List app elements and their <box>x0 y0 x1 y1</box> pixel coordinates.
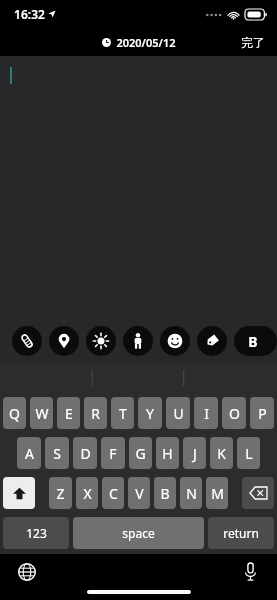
button[interactable]: E <box>57 397 80 429</box>
button[interactable]: Change keyboard language <box>12 557 42 587</box>
staticText: X <box>83 484 92 503</box>
staticText: C <box>109 484 118 503</box>
staticText: Y <box>146 404 154 423</box>
button[interactable]: return <box>208 517 274 549</box>
button[interactable]: H <box>156 437 179 469</box>
button[interactable]: Person <box>123 326 153 356</box>
button[interactable]: Shift <box>3 477 35 509</box>
button[interactable]: C <box>102 477 124 509</box>
button[interactable]: S <box>45 437 69 469</box>
button[interactable]: P <box>250 397 274 429</box>
staticText: U <box>173 404 184 423</box>
button[interactable]: Q <box>3 397 26 429</box>
staticText: 完了 <box>241 35 265 50</box>
staticText: M <box>211 484 224 503</box>
staticText: G <box>135 444 146 463</box>
staticText: B <box>248 332 258 351</box>
button[interactable]: 123 <box>3 517 69 549</box>
button[interactable]: B <box>154 477 176 509</box>
staticText: J <box>193 444 197 463</box>
button[interactable]: Y <box>138 397 162 429</box>
button[interactable]: D <box>73 437 97 469</box>
button[interactable]: F <box>101 437 125 469</box>
staticText: H <box>162 444 173 463</box>
staticText: Z <box>56 484 65 503</box>
button[interactable]: W <box>30 397 53 429</box>
staticText: space <box>122 525 155 541</box>
button[interactable]: Brightness <box>86 326 116 356</box>
button[interactable]: Backspace <box>242 477 274 509</box>
button[interactable]: U <box>166 397 190 429</box>
button[interactable]: J <box>183 437 206 469</box>
staticText: P <box>258 404 267 423</box>
staticText: N <box>186 484 197 503</box>
staticText: 16:32 <box>14 6 45 22</box>
button[interactable]: 完了 <box>229 31 277 54</box>
button[interactable]: L <box>237 437 260 469</box>
staticText: L <box>245 444 253 463</box>
button[interactable]: Attach <box>12 326 42 356</box>
button[interactable]: B <box>234 326 277 356</box>
button[interactable]: Z <box>49 477 72 509</box>
button[interactable]: R <box>84 397 107 429</box>
staticText: T <box>119 404 127 423</box>
button[interactable]: Tag <box>197 326 227 356</box>
staticText: return <box>223 525 259 541</box>
staticText: E <box>65 404 73 423</box>
staticText: Q <box>9 404 20 423</box>
staticText: S <box>53 444 61 463</box>
staticText: V <box>135 484 144 503</box>
button[interactable]: K <box>210 437 233 469</box>
staticText: 123 <box>26 525 47 541</box>
staticText: I <box>204 404 209 423</box>
staticText: D <box>80 444 91 463</box>
button[interactable]: Location <box>49 326 79 356</box>
button[interactable]: X <box>76 477 98 509</box>
button[interactable]: T <box>111 397 134 429</box>
button[interactable]: Dictation <box>235 557 265 587</box>
button[interactable]: A <box>17 437 41 469</box>
button[interactable]: space <box>73 517 204 549</box>
staticText: 2020/05/12 <box>116 35 176 50</box>
staticText: K <box>217 444 226 463</box>
button[interactable]: Emoji <box>160 326 190 356</box>
staticText: R <box>91 404 100 423</box>
staticText: W <box>35 404 49 423</box>
button[interactable]: M <box>206 477 228 509</box>
staticText: O <box>229 404 240 423</box>
button[interactable]: N <box>180 477 202 509</box>
button[interactable]: O <box>222 397 246 429</box>
staticText: B <box>160 484 170 503</box>
button[interactable]: V <box>128 477 150 509</box>
button[interactable]: G <box>129 437 152 469</box>
staticText: A <box>25 444 34 463</box>
button[interactable]: I <box>194 397 218 429</box>
staticText: F <box>109 444 117 463</box>
